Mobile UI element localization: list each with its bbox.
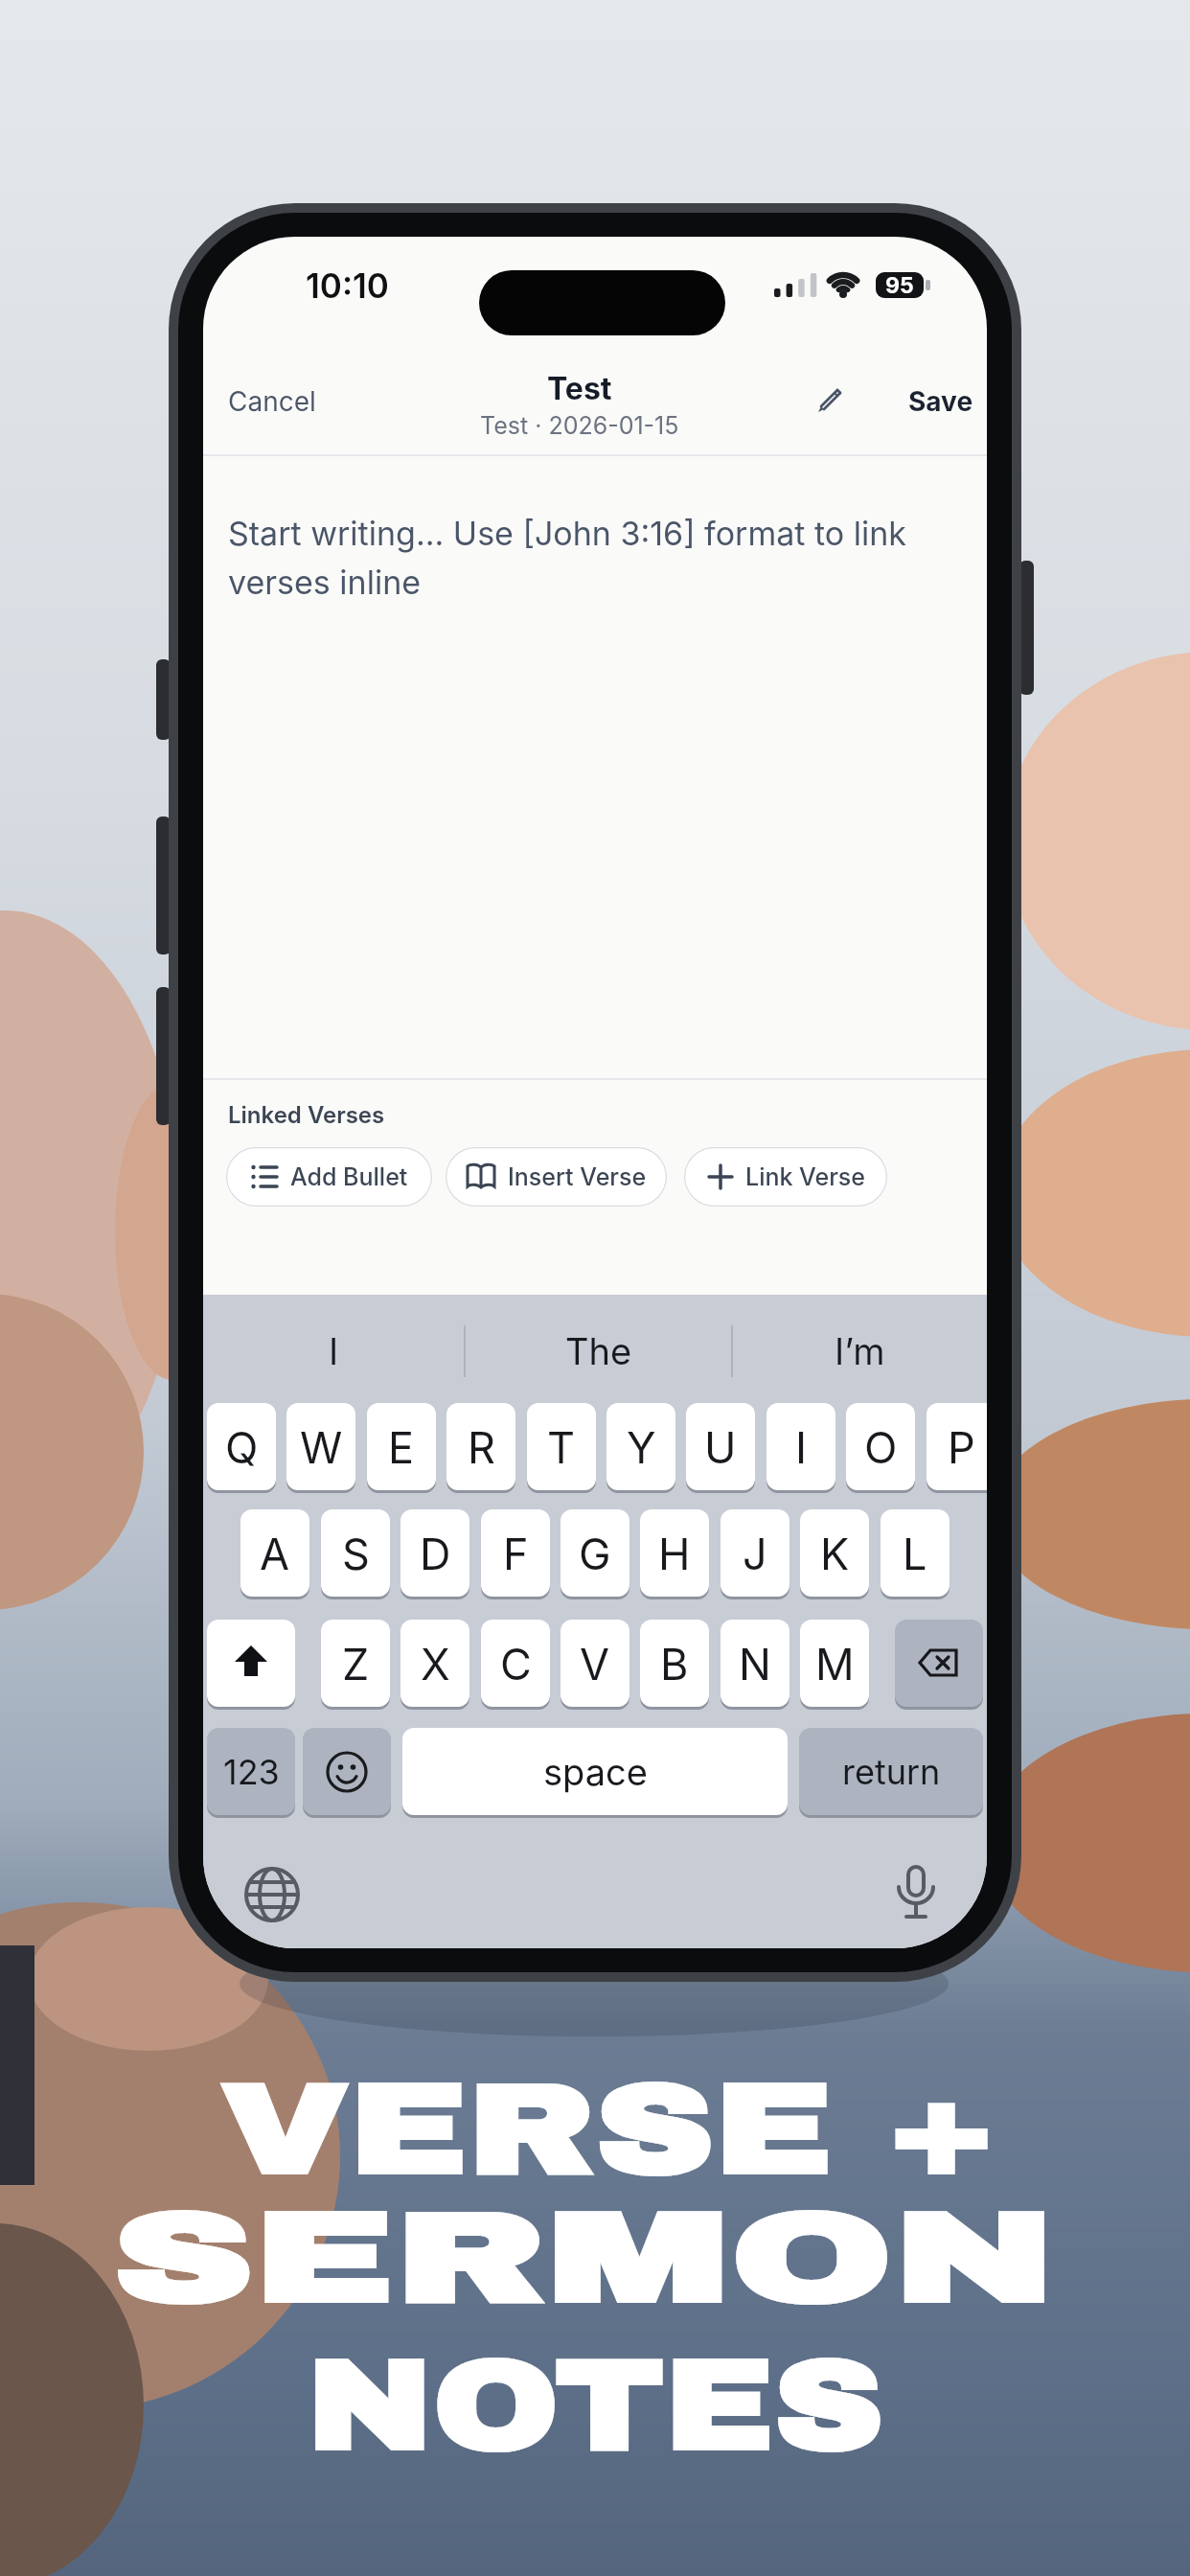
button[interactable]: Add Bullet bbox=[226, 1147, 432, 1207]
staticText: J bbox=[743, 1528, 767, 1579]
button[interactable]: Insert Verse bbox=[446, 1147, 667, 1207]
staticText: X bbox=[421, 1638, 450, 1690]
button[interactable]: M bbox=[800, 1620, 869, 1707]
staticText: C bbox=[500, 1638, 532, 1690]
button[interactable]: Q bbox=[207, 1403, 276, 1490]
button[interactable]: E bbox=[367, 1403, 436, 1490]
staticText: SERMON bbox=[113, 2188, 1056, 2328]
button[interactable] bbox=[207, 1620, 295, 1707]
button[interactable]: 123 bbox=[207, 1728, 295, 1815]
staticText: U bbox=[704, 1421, 737, 1473]
button[interactable]: Z bbox=[321, 1620, 390, 1707]
button[interactable] bbox=[239, 1861, 306, 1928]
staticText: H bbox=[658, 1528, 691, 1579]
staticText: Z bbox=[342, 1638, 370, 1690]
staticText: The bbox=[565, 1329, 632, 1373]
button[interactable]: J bbox=[721, 1509, 790, 1597]
staticText: Start writing... Use [John 3:16] format … bbox=[228, 514, 906, 553]
staticText: 10:10 bbox=[306, 265, 389, 306]
staticText: Linked Verses bbox=[228, 1101, 385, 1129]
staticText: R bbox=[468, 1421, 495, 1473]
button[interactable]: B bbox=[640, 1620, 709, 1707]
button[interactable]: R bbox=[446, 1403, 515, 1490]
staticText: Y bbox=[627, 1421, 656, 1473]
staticText: space bbox=[543, 1750, 648, 1794]
staticText: Add Bullet bbox=[290, 1162, 408, 1191]
button[interactable] bbox=[895, 1620, 983, 1707]
staticText: L bbox=[903, 1528, 927, 1579]
staticText: M bbox=[815, 1638, 855, 1690]
staticText: verses inline bbox=[228, 563, 422, 602]
staticText: I bbox=[795, 1421, 808, 1473]
staticText: N bbox=[739, 1638, 771, 1690]
staticText: I bbox=[329, 1329, 339, 1373]
staticText: Insert Verse bbox=[508, 1162, 647, 1191]
button[interactable]: Y bbox=[606, 1403, 675, 1490]
button[interactable]: I bbox=[767, 1403, 835, 1490]
button[interactable]: return bbox=[799, 1728, 983, 1815]
button[interactable]: N bbox=[721, 1620, 790, 1707]
staticText: NOTES bbox=[307, 2335, 884, 2475]
button[interactable]: K bbox=[800, 1509, 869, 1597]
button[interactable]: O bbox=[846, 1403, 915, 1490]
button[interactable]: X bbox=[400, 1620, 469, 1707]
button[interactable]: T bbox=[527, 1403, 596, 1490]
button[interactable]: D bbox=[400, 1509, 469, 1597]
staticText: 123 bbox=[223, 1751, 280, 1793]
staticText: E bbox=[388, 1421, 415, 1473]
button[interactable]: Cancel bbox=[228, 367, 381, 436]
button[interactable]: F bbox=[481, 1509, 550, 1597]
staticText: Link Verse bbox=[745, 1162, 865, 1191]
button[interactable]: I’m bbox=[732, 1322, 987, 1381]
staticText: D bbox=[420, 1528, 451, 1579]
staticText: F bbox=[503, 1528, 529, 1579]
button[interactable]: Save bbox=[874, 367, 973, 436]
button[interactable]: I bbox=[203, 1322, 465, 1381]
staticText: A bbox=[260, 1528, 290, 1579]
button[interactable]: V bbox=[561, 1620, 629, 1707]
staticText: 95 bbox=[885, 272, 914, 298]
button[interactable]: S bbox=[321, 1509, 390, 1597]
staticText: O bbox=[864, 1421, 898, 1473]
staticText: VERSE + bbox=[221, 2059, 996, 2199]
staticText: B bbox=[660, 1638, 689, 1690]
button[interactable]: L bbox=[881, 1509, 950, 1597]
staticText: S bbox=[342, 1528, 370, 1579]
button[interactable]: U bbox=[686, 1403, 755, 1490]
button[interactable] bbox=[303, 1728, 391, 1815]
button[interactable]: Link Verse bbox=[684, 1147, 887, 1207]
staticText: Test · 2026-01-15 bbox=[480, 411, 679, 440]
button[interactable]: G bbox=[561, 1509, 629, 1597]
button[interactable]: The bbox=[465, 1322, 732, 1381]
staticText: G bbox=[579, 1528, 611, 1579]
button[interactable]: W bbox=[286, 1403, 355, 1490]
staticText: V bbox=[580, 1638, 610, 1690]
staticText: return bbox=[842, 1751, 941, 1793]
staticText: Q bbox=[225, 1421, 259, 1473]
button[interactable] bbox=[805, 375, 855, 425]
staticText: Cancel bbox=[228, 385, 316, 418]
button[interactable]: A bbox=[240, 1509, 309, 1597]
staticText: K bbox=[820, 1528, 850, 1579]
staticText: P bbox=[948, 1421, 975, 1473]
button[interactable] bbox=[882, 1861, 950, 1928]
button[interactable]: P bbox=[927, 1403, 987, 1490]
button[interactable]: space bbox=[402, 1728, 788, 1815]
button[interactable]: C bbox=[481, 1620, 550, 1707]
staticText: Save bbox=[908, 385, 973, 418]
button[interactable]: H bbox=[640, 1509, 709, 1597]
staticText: T bbox=[547, 1421, 576, 1473]
staticText: W bbox=[300, 1421, 343, 1473]
staticText: I’m bbox=[835, 1329, 885, 1373]
staticText: Test bbox=[547, 370, 612, 407]
